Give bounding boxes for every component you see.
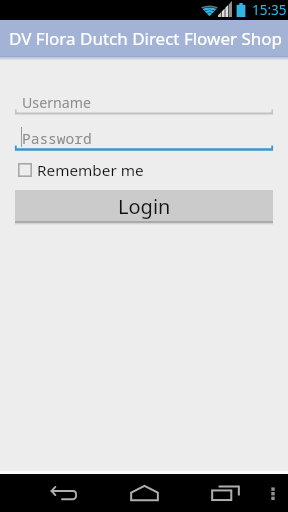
button[interactable]: Remember me: [15, 158, 150, 182]
staticText: DV Flora Dutch Direct Flower Shop: [9, 27, 283, 50]
staticText: Username: [22, 93, 92, 112]
button[interactable]: Password: [15, 127, 273, 151]
button[interactable]: More options: [258, 474, 288, 512]
staticText: Login: [118, 193, 171, 220]
button[interactable]: Home: [104, 474, 184, 512]
button[interactable]: DV Flora Dutch Direct Flower Shop: [0, 20, 288, 57]
button[interactable]: Username: [15, 91, 273, 115]
staticText: Password: [22, 128, 92, 148]
staticText: Remember me: [37, 160, 144, 181]
button[interactable]: Back: [24, 474, 104, 512]
button[interactable]: Recent apps: [185, 474, 265, 512]
staticText: 15:35: [252, 1, 287, 19]
button[interactable]: Login: [15, 190, 273, 223]
